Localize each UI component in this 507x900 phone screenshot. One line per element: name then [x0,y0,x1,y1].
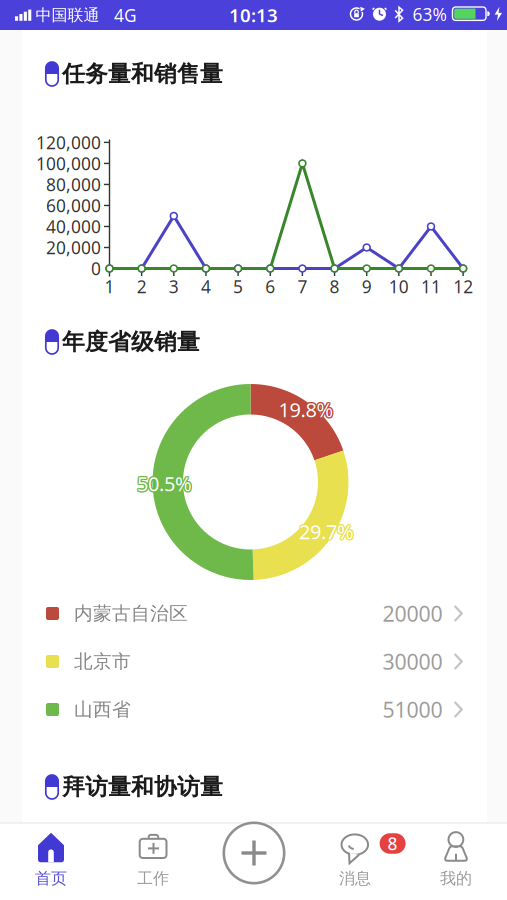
staticText: 年度省级销量 [62,328,200,356]
staticText: 29.7% [298,517,353,544]
staticText: 中国联通 [35,5,99,25]
staticText: 60,000 [46,194,101,217]
staticText: 工作 [137,869,169,888]
staticText: 100,000 [36,152,101,175]
staticText: 29.7% [298,518,353,545]
staticText: 20000 [382,599,442,628]
staticText: 63% [412,3,446,26]
staticText: 29.7% [299,518,354,545]
staticText: 3 [169,275,179,298]
staticText: 10 [389,275,409,298]
staticText: 4G [114,4,137,27]
staticText: 50.5% [136,471,191,498]
staticText: 29.7% [300,517,355,544]
staticText: 19.8% [278,396,333,423]
button[interactable]: 山西省 [22,685,487,733]
staticText: 8 [388,832,398,855]
button[interactable]: 工作 [101,823,203,900]
staticText: 30000 [382,647,442,676]
button[interactable]: 8 [304,823,406,900]
staticText: 首页 [35,869,67,888]
staticText: 19.8% [279,397,334,424]
staticText: 50.5% [138,471,193,498]
staticText: 我的 [440,869,472,888]
staticText: 29.7% [299,519,354,546]
staticText: 北京市 [74,650,131,673]
button[interactable]: 北京市 [22,637,487,685]
staticText: 19.8% [278,395,333,422]
staticText: 50.5% [137,471,192,498]
staticText: 29.7% [300,519,355,546]
staticText: 29.7% [298,519,353,546]
button[interactable]: 我的 [406,823,507,900]
staticText: 内蒙古自治区 [74,602,188,625]
staticText: 50.5% [136,470,191,497]
staticText: 任务量和销售量 [62,60,223,88]
staticText: 11 [421,275,441,298]
staticText: 10:13 [229,3,278,27]
staticText: 8 [329,275,339,298]
staticText: 拜访量和协访量 [62,773,223,801]
staticText: 120,000 [36,131,101,154]
button[interactable]: 内蒙古自治区 [22,589,487,637]
staticText: 40,000 [46,215,101,238]
staticText: 29.7% [299,517,354,544]
staticText: 12 [453,275,473,298]
staticText: 19.8% [280,396,335,423]
staticText: 20,000 [46,236,101,259]
staticText: 山西省 [74,698,131,721]
staticText: 6 [265,275,275,298]
staticText: 19.8% [278,397,333,424]
staticText: 50.5% [137,469,192,496]
staticText: 50.5% [138,469,193,496]
staticText: 80,000 [46,173,101,196]
staticText: 19.8% [278,397,333,424]
staticText: 50.5% [138,470,193,497]
staticText: 19.8% [277,396,332,423]
staticText: 51000 [382,695,442,724]
staticText: 5 [233,275,243,298]
staticText: 9 [362,275,372,298]
staticText: 2 [137,275,147,298]
staticText: 7 [297,275,307,298]
staticText: 消息 [339,869,371,888]
button[interactable]: 首页 [0,823,101,900]
button[interactable] [203,823,304,900]
staticText: 19.8% [278,395,333,422]
staticText: 1 [104,275,114,298]
staticText: 0 [91,257,101,280]
staticText: 19.8% [279,395,334,422]
staticText: 50.5% [136,469,191,496]
staticText: 29.7% [300,518,355,545]
staticText: 50.5% [137,470,192,497]
staticText: 4 [201,275,211,298]
